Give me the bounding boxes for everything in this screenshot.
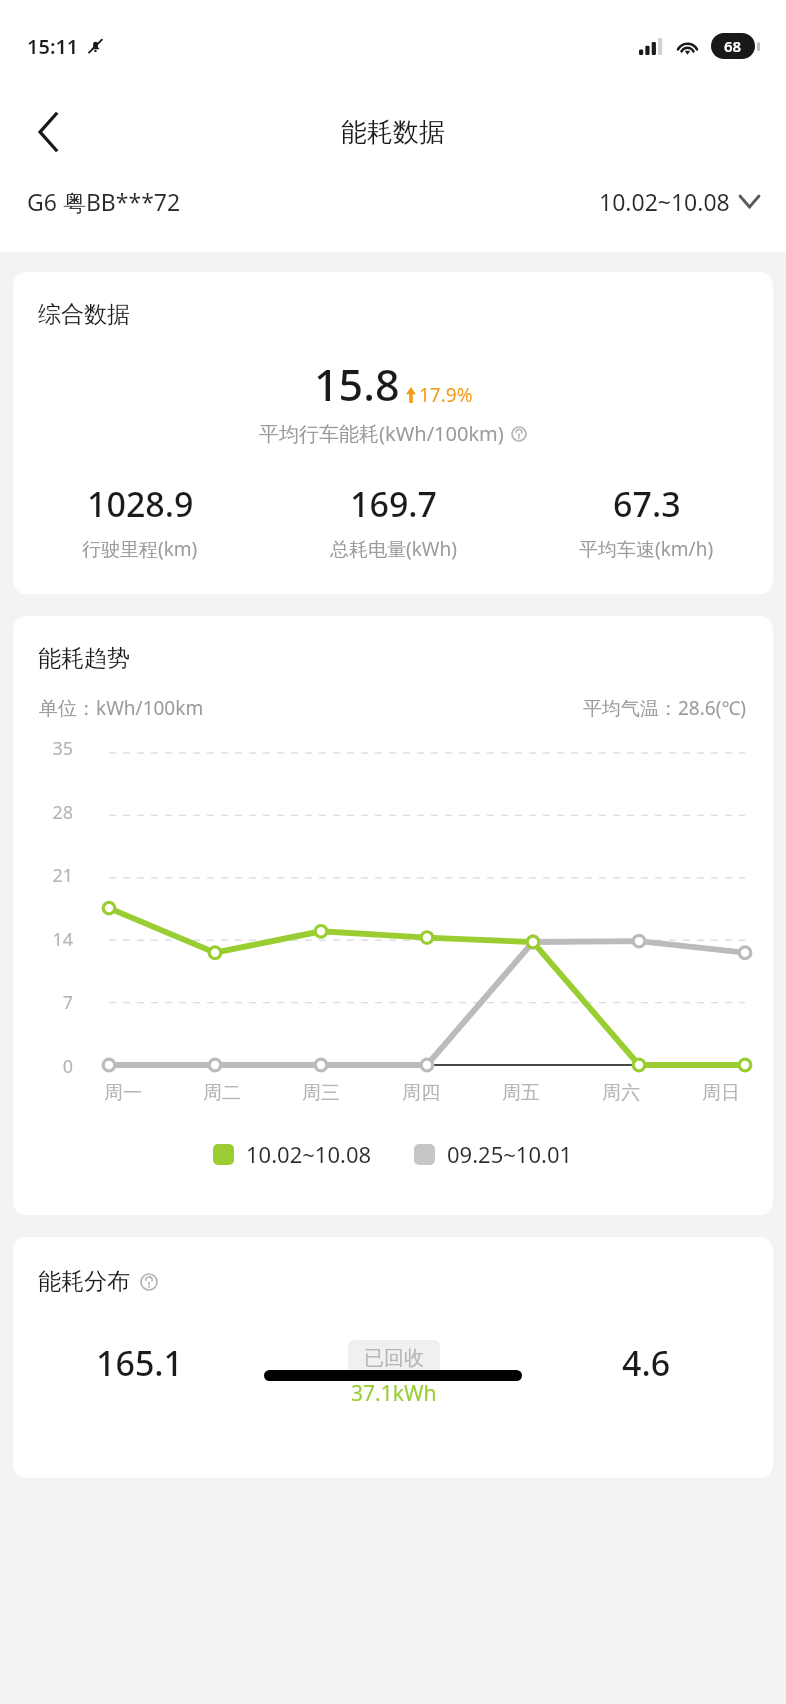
- staticText: G6 粤BB***72: [27, 186, 181, 217]
- staticText: 能耗分布: [38, 1267, 130, 1296]
- staticText: 总耗电量(kWh): [330, 536, 457, 562]
- staticText: 165.1: [96, 1340, 184, 1386]
- staticText: 15:11: [27, 33, 79, 60]
- staticText: 周五: [502, 1081, 540, 1105]
- staticText: 周二: [203, 1081, 241, 1105]
- staticText: 4.6: [622, 1340, 671, 1386]
- staticText: 平均行车能耗(kWh/100km): [259, 420, 504, 447]
- staticText: 68: [724, 36, 742, 56]
- staticText: 平均车速(km/h): [579, 536, 714, 562]
- button[interactable]: Back: [18, 102, 78, 162]
- staticText: 37.1kWh: [351, 1379, 437, 1408]
- staticText: 能耗数据: [341, 116, 445, 149]
- staticText: 10.02~10.08: [246, 1139, 372, 1169]
- staticText: 单位：kWh/100km: [39, 695, 204, 721]
- staticText: 14: [39, 927, 73, 952]
- staticText: 10.02~10.08: [599, 186, 730, 217]
- staticText: 行驶里程(km): [82, 536, 198, 562]
- staticText: 周一: [104, 1081, 142, 1105]
- staticText: 7: [39, 990, 73, 1015]
- staticText: 17.9%: [419, 382, 473, 408]
- staticText: 综合数据: [38, 300, 130, 329]
- staticText: 平均气温：28.6(℃): [583, 695, 747, 721]
- staticText: 09.25~10.01: [447, 1139, 573, 1169]
- staticText: 21: [39, 863, 73, 888]
- staticText: 35: [39, 736, 73, 761]
- staticText: 周四: [402, 1081, 440, 1105]
- staticText: 已回收: [364, 1346, 424, 1371]
- staticText: 15.8: [314, 355, 400, 414]
- staticText: 周六: [602, 1081, 640, 1105]
- staticText: 0: [39, 1054, 73, 1079]
- staticText: 能耗趋势: [38, 644, 130, 673]
- staticText: 1028.9: [87, 481, 194, 527]
- button[interactable]: 09.25~10.01: [414, 1139, 573, 1169]
- staticText: 周日: [702, 1081, 740, 1105]
- staticText: 67.3: [613, 481, 681, 527]
- button[interactable]: 10.02~10.08: [213, 1139, 372, 1169]
- staticText: 28: [39, 800, 73, 825]
- staticText: 169.7: [350, 481, 438, 527]
- button[interactable]: 10.02~10.08: [599, 178, 759, 225]
- staticText: 周三: [302, 1081, 340, 1105]
